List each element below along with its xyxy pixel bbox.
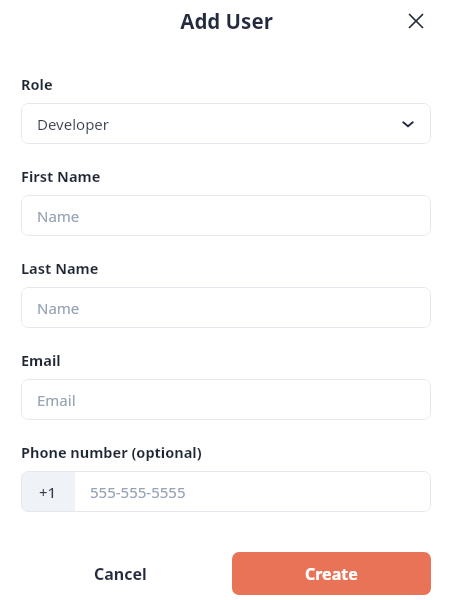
staticText: First Name xyxy=(21,166,101,186)
staticText: +1 xyxy=(39,482,57,502)
button[interactable]: Cancel xyxy=(21,552,220,595)
staticText: Phone number (optional) xyxy=(21,442,202,462)
staticText: Add User xyxy=(180,7,273,35)
staticText: Last Name xyxy=(21,258,99,278)
staticText: Role xyxy=(21,74,53,94)
staticText: Create xyxy=(305,563,358,585)
staticText: Email xyxy=(37,390,76,410)
staticText: 555-555-5555 xyxy=(90,482,186,502)
button[interactable]: +1 xyxy=(21,471,431,512)
staticText: Cancel xyxy=(94,563,147,585)
button[interactable]: Email xyxy=(21,379,431,420)
staticText: Name xyxy=(37,206,80,226)
button[interactable]: Name xyxy=(21,287,431,328)
staticText: Name xyxy=(37,298,80,318)
button[interactable]: Developer xyxy=(21,103,431,144)
button[interactable]: Create xyxy=(232,552,431,595)
button[interactable]: Close xyxy=(401,6,431,36)
staticText: Developer xyxy=(37,114,110,134)
button[interactable]: Name xyxy=(21,195,431,236)
staticText: Email xyxy=(21,350,61,370)
